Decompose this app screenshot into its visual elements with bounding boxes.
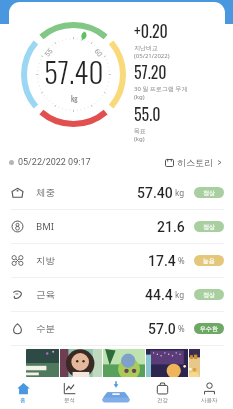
staticText: 우수한 (200, 325, 218, 333)
staticText: 55.0 (134, 102, 161, 126)
staticText: 사용자 (201, 397, 218, 404)
staticText: 홈 (20, 397, 26, 404)
staticText: 수분 (36, 323, 55, 335)
staticText: BMI (36, 220, 55, 233)
staticText: 정상 (203, 189, 215, 197)
staticText: 57.40 (137, 185, 173, 201)
staticText: 체중 (36, 187, 55, 199)
button[interactable] (103, 349, 145, 377)
button[interactable]: 체중 (0, 176, 233, 209)
staticText: 건강 (157, 397, 168, 404)
staticText: 정상 (203, 223, 215, 231)
staticText: kg (175, 289, 185, 300)
button[interactable] (26, 349, 59, 377)
staticText: (05/21/2022) (134, 52, 170, 60)
staticText: 30 일 프로그램 무게 (134, 85, 188, 93)
staticText: 05/22/2022 09:17 (18, 157, 91, 168)
staticText: +0.20 (134, 19, 168, 43)
button[interactable]: 분석 (46, 377, 92, 409)
staticText: 57.0 (148, 321, 176, 337)
staticText: 55 (43, 47, 55, 59)
button[interactable]: 홈 (0, 377, 46, 409)
staticText: 히스토리 (177, 157, 213, 168)
button[interactable] (60, 349, 102, 377)
button[interactable]: 측정 (92, 377, 139, 409)
button[interactable]: 건강 (139, 377, 186, 409)
staticText: 21.6 (157, 219, 185, 235)
button[interactable]: 지방 (0, 244, 233, 277)
staticText: 60 (92, 47, 104, 59)
staticText: % (178, 323, 185, 334)
staticText: 44.4 (145, 287, 173, 303)
staticText: 근육 (36, 289, 55, 301)
staticText: 지방 (36, 255, 55, 267)
staticText: kg (71, 93, 78, 104)
button[interactable]: BMI (0, 210, 233, 243)
staticText: (kg) (134, 93, 145, 101)
button[interactable]: 히스토리 (163, 153, 224, 172)
staticText: 57.20 (134, 60, 167, 84)
staticText: 57.40 (44, 49, 104, 92)
button[interactable] (146, 349, 188, 377)
button[interactable]: 근육 (0, 278, 233, 311)
staticText: 분석 (64, 397, 75, 404)
staticText: 높음 (203, 257, 215, 265)
staticText: 17.4 (148, 253, 176, 269)
staticText: (kg) (134, 135, 145, 143)
button[interactable] (189, 349, 200, 377)
staticText: 지난비교 (134, 44, 158, 52)
button[interactable]: 사용자 (186, 377, 233, 409)
button[interactable]: 수분 (0, 312, 233, 345)
staticText: 정상 (203, 291, 215, 299)
staticText: kg (175, 187, 185, 198)
staticText: % (178, 255, 185, 266)
staticText: 목표 (134, 127, 146, 135)
